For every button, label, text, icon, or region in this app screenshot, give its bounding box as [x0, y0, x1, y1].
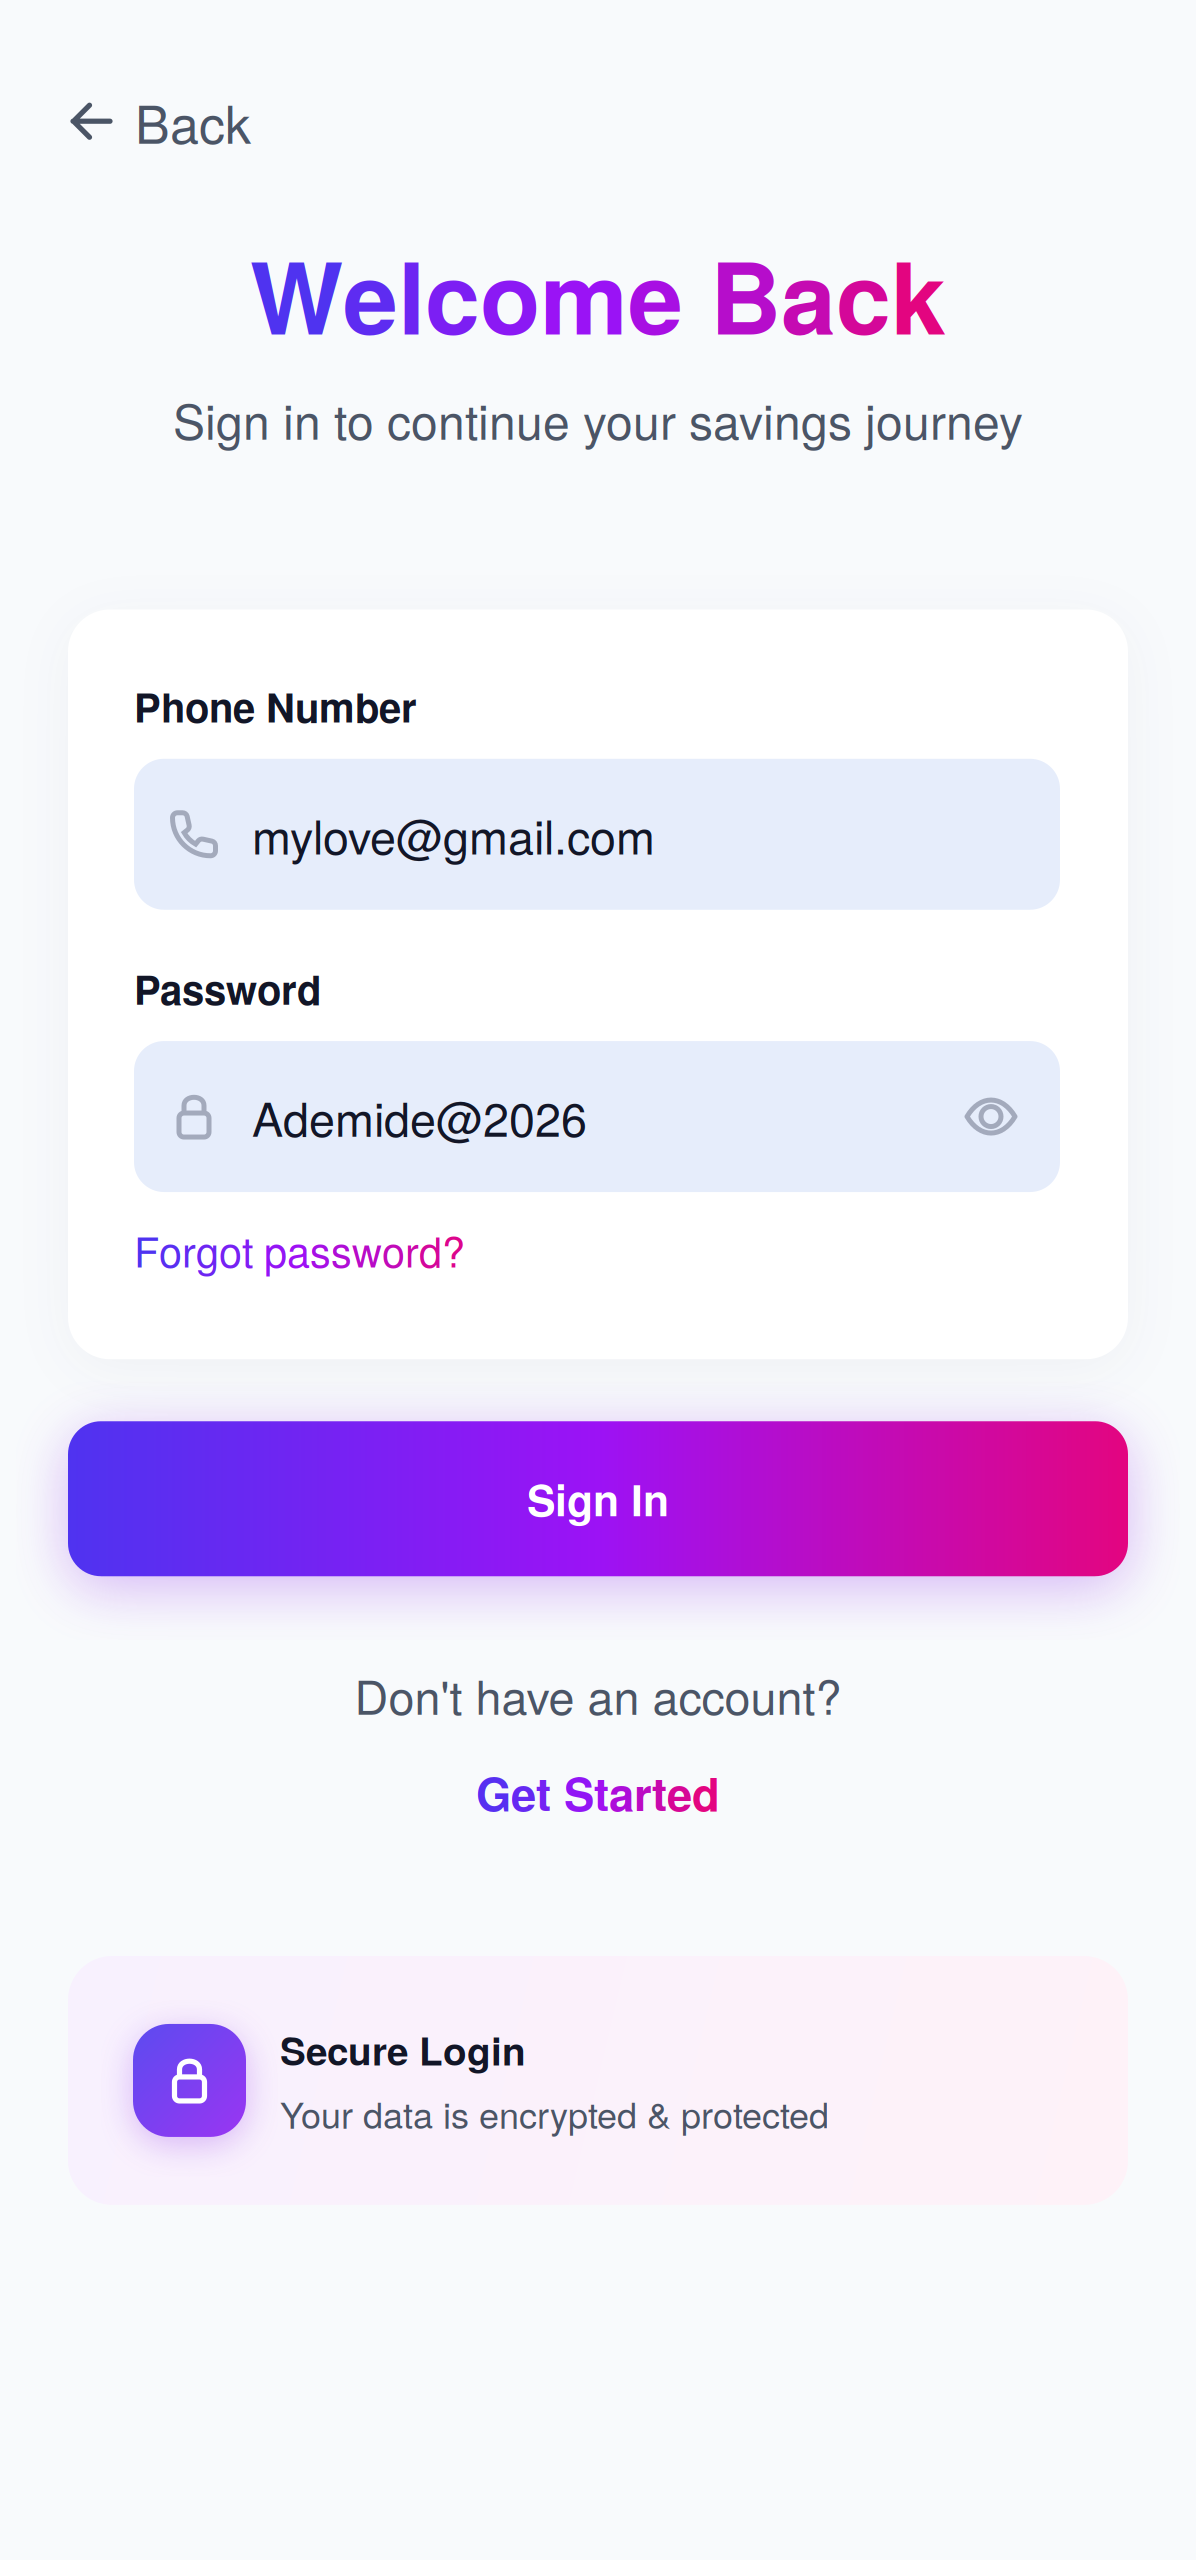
staticText: Password	[134, 960, 321, 1017]
staticText: B	[710, 223, 781, 365]
staticText: t	[652, 1760, 667, 1825]
staticText: Back	[135, 84, 251, 158]
staticText: s	[331, 1220, 352, 1279]
staticText: Phone Number	[134, 677, 417, 735]
staticText: Sign In	[527, 1468, 669, 1529]
staticText: l	[398, 223, 425, 365]
staticText: S	[564, 1760, 594, 1825]
staticText: e	[511, 1760, 536, 1825]
staticText: Don't have an account?	[354, 1661, 841, 1728]
button[interactable]: G	[476, 1728, 720, 1827]
staticText: Secure Login	[280, 2022, 526, 2077]
staticText: c	[425, 223, 480, 365]
button[interactable]: Show password	[964, 1093, 1018, 1141]
staticText: o	[159, 1220, 182, 1279]
staticText: o	[382, 1220, 405, 1279]
staticText: Sign in to continue your savings journey	[173, 385, 1023, 453]
staticText: t	[536, 1760, 551, 1825]
staticText: Your data is encrypted & protected	[280, 2087, 829, 2139]
staticText: r	[634, 1760, 652, 1825]
staticText: r	[405, 1220, 419, 1279]
staticText: e	[628, 223, 683, 365]
staticText: t	[242, 1220, 253, 1279]
staticText: W	[250, 223, 343, 365]
staticText: mylove@gmail.com	[252, 801, 655, 868]
staticText: o	[219, 1220, 242, 1279]
staticText: F	[134, 1220, 159, 1279]
staticText: a	[781, 223, 836, 365]
staticText: Ademide@2026	[252, 1083, 587, 1150]
staticText: a	[287, 1220, 310, 1279]
staticText: d	[419, 1220, 442, 1279]
staticText: m	[540, 223, 628, 365]
staticText: t	[594, 1760, 609, 1825]
staticText: p	[264, 1220, 287, 1279]
staticText: e	[343, 223, 398, 365]
staticText: c	[836, 223, 891, 365]
button[interactable]: Back	[0, 0, 281, 198]
staticText: d	[692, 1760, 720, 1825]
staticText: ?	[442, 1220, 465, 1279]
button[interactable]: F	[134, 1192, 465, 1281]
staticText: r	[182, 1220, 196, 1279]
staticText: w	[352, 1220, 382, 1279]
staticText: o	[480, 223, 540, 365]
staticText: g	[196, 1220, 219, 1279]
staticText: e	[667, 1760, 692, 1825]
staticText: a	[609, 1760, 634, 1825]
staticText: G	[476, 1760, 511, 1825]
staticText: k	[891, 223, 946, 365]
staticText: s	[310, 1220, 331, 1279]
button[interactable]: Sign In	[68, 1421, 1128, 1576]
